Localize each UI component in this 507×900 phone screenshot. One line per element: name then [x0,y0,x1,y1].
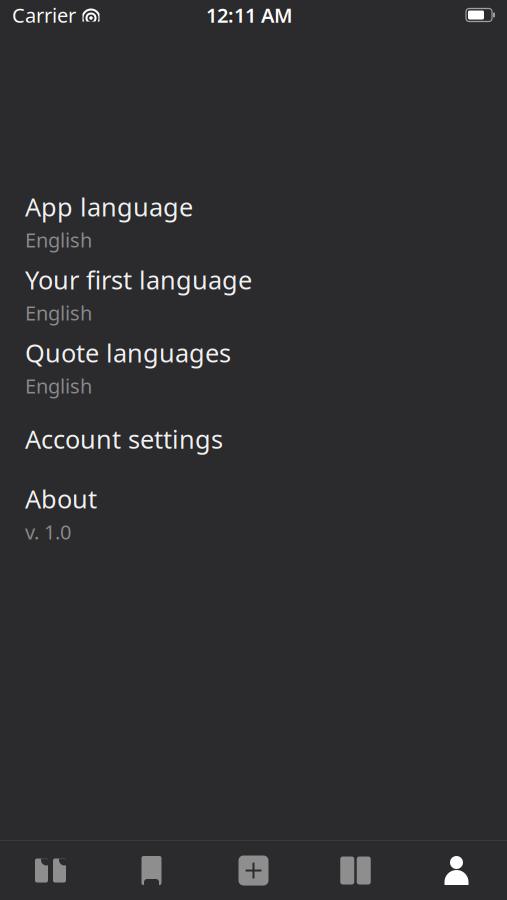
button[interactable]: Add [202,841,305,900]
button[interactable]: About [0,477,507,550]
staticText: v. 1.0 [25,518,71,545]
button[interactable]: App language [0,185,507,258]
button[interactable]: Bookmarks [101,841,202,900]
staticText: English [25,372,92,399]
button[interactable]: Quotes [0,841,101,900]
staticText: English [25,299,92,326]
staticText: 12:11 AM [206,2,293,28]
button[interactable]: Account settings [0,404,507,477]
staticText: About [25,482,97,515]
button[interactable]: Your first language [0,258,507,331]
staticText: App language [25,190,193,223]
button[interactable]: Quote languages [0,331,507,404]
button[interactable]: Library [305,841,406,900]
staticText: English [25,226,92,253]
staticText: Carrier [12,2,76,28]
button[interactable]: Profile [406,841,507,900]
staticText: Quote languages [25,336,231,369]
staticText: Account settings [25,422,223,456]
staticText: Your first language [25,263,252,296]
